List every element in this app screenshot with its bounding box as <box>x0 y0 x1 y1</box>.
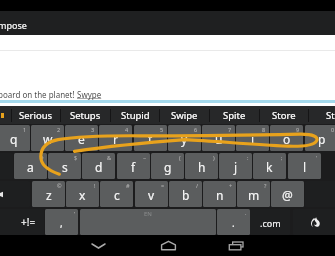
staticText: c <box>114 187 120 203</box>
button[interactable] <box>293 209 335 235</box>
button[interactable]: ’ <box>45 209 78 235</box>
button[interactable]: / <box>169 181 202 207</box>
staticText: ' <box>316 154 318 161</box>
staticText: q <box>10 131 18 147</box>
staticText: # <box>40 154 44 161</box>
staticText: z <box>46 187 52 203</box>
button[interactable]: 3 <box>65 125 98 151</box>
staticText: .com <box>260 217 281 229</box>
staticText: ~ <box>143 154 147 161</box>
staticText: 3 <box>91 126 95 133</box>
button[interactable]: & <box>82 153 115 179</box>
staticText: EN <box>144 210 152 218</box>
staticText: u <box>215 131 223 147</box>
staticText: n <box>216 187 224 203</box>
button[interactable]: ( <box>151 153 184 179</box>
staticText: o <box>283 131 291 147</box>
staticText: Spite <box>223 109 246 122</box>
button[interactable]: # <box>100 181 133 207</box>
button[interactable]: @ <box>271 181 304 207</box>
button[interactable]: Sto <box>308 106 335 124</box>
staticText: ’ <box>74 210 75 217</box>
button[interactable]: © <box>32 181 65 207</box>
button[interactable]: 1 <box>0 125 30 151</box>
button[interactable]: Store <box>259 106 309 124</box>
staticText: . <box>232 216 235 230</box>
staticText: @ <box>282 187 293 203</box>
button[interactable]: · <box>217 209 250 235</box>
button[interactable]: 5 <box>134 125 167 151</box>
button[interactable]: ~ <box>117 153 150 179</box>
button[interactable]: # <box>14 153 47 179</box>
staticText: k <box>266 159 273 175</box>
staticText: Serious <box>19 109 53 122</box>
button[interactable]: 2 <box>31 125 64 151</box>
button[interactable]: ! <box>66 181 99 207</box>
staticText: , <box>60 216 63 230</box>
button[interactable]: 4 <box>99 125 132 151</box>
staticText: 1 <box>23 126 27 133</box>
staticText: y <box>181 131 188 147</box>
staticText: g <box>164 159 172 175</box>
staticText: + <box>229 182 233 189</box>
button[interactable] <box>0 181 30 207</box>
button[interactable]: Home <box>140 235 196 256</box>
button[interactable]: 8 <box>236 125 269 151</box>
staticText: ? <box>264 182 267 189</box>
staticText: : <box>247 154 249 161</box>
button[interactable]: = <box>135 181 168 207</box>
button[interactable]: Hide keyboard <box>70 235 126 256</box>
staticText: 0 <box>331 126 335 133</box>
button[interactable]: Serious <box>11 106 61 124</box>
staticText: 9 <box>296 126 300 133</box>
button[interactable]: .com <box>250 209 290 235</box>
staticText: Store <box>272 109 296 122</box>
staticText: ; <box>281 154 283 161</box>
staticText: m <box>248 187 260 203</box>
button[interactable]: Stupid <box>110 106 160 124</box>
button[interactable]: : <box>219 153 252 179</box>
button[interactable]: 9 <box>270 125 303 151</box>
button[interactable]: ; <box>253 153 286 179</box>
button[interactable]: ) <box>185 153 218 179</box>
button[interactable]: 7 <box>202 125 235 151</box>
staticText: 5 <box>160 126 164 133</box>
staticText: 4 <box>125 126 129 133</box>
staticText: 8 <box>262 126 266 133</box>
button[interactable]: 6 <box>168 125 201 151</box>
button[interactable]: 0 <box>305 125 335 151</box>
staticText: i <box>251 131 255 147</box>
staticText: h <box>198 159 206 175</box>
button[interactable]: Setups <box>60 106 110 124</box>
staticText: e <box>78 131 85 147</box>
staticText: +!= <box>21 215 36 229</box>
button[interactable]: Swipe <box>159 106 209 124</box>
button[interactable]: + <box>203 181 236 207</box>
staticText: board on the planet! <box>0 89 77 100</box>
staticText: f <box>131 159 136 175</box>
staticText: b <box>182 187 190 203</box>
staticText: # <box>126 182 130 189</box>
staticText: l <box>303 159 307 175</box>
button[interactable]: $ <box>48 153 81 179</box>
staticText: a <box>27 159 34 175</box>
button[interactable]: ? <box>237 181 270 207</box>
staticText: x <box>79 187 86 203</box>
staticText: v <box>148 187 155 203</box>
staticText: t <box>148 131 153 147</box>
staticText: · <box>245 210 247 217</box>
button[interactable]: Recent apps <box>208 235 264 256</box>
staticText: 2 <box>57 126 61 133</box>
button[interactable]: Spite <box>209 106 259 124</box>
staticText: = <box>161 182 165 189</box>
staticText: 6 <box>194 126 198 133</box>
button[interactable]: +!= <box>0 209 44 235</box>
button[interactable]: ' <box>288 153 321 179</box>
staticText: j <box>234 159 238 175</box>
staticText: ! <box>94 182 96 189</box>
staticText: Setups <box>70 109 101 122</box>
staticText: Swipe <box>171 109 198 122</box>
